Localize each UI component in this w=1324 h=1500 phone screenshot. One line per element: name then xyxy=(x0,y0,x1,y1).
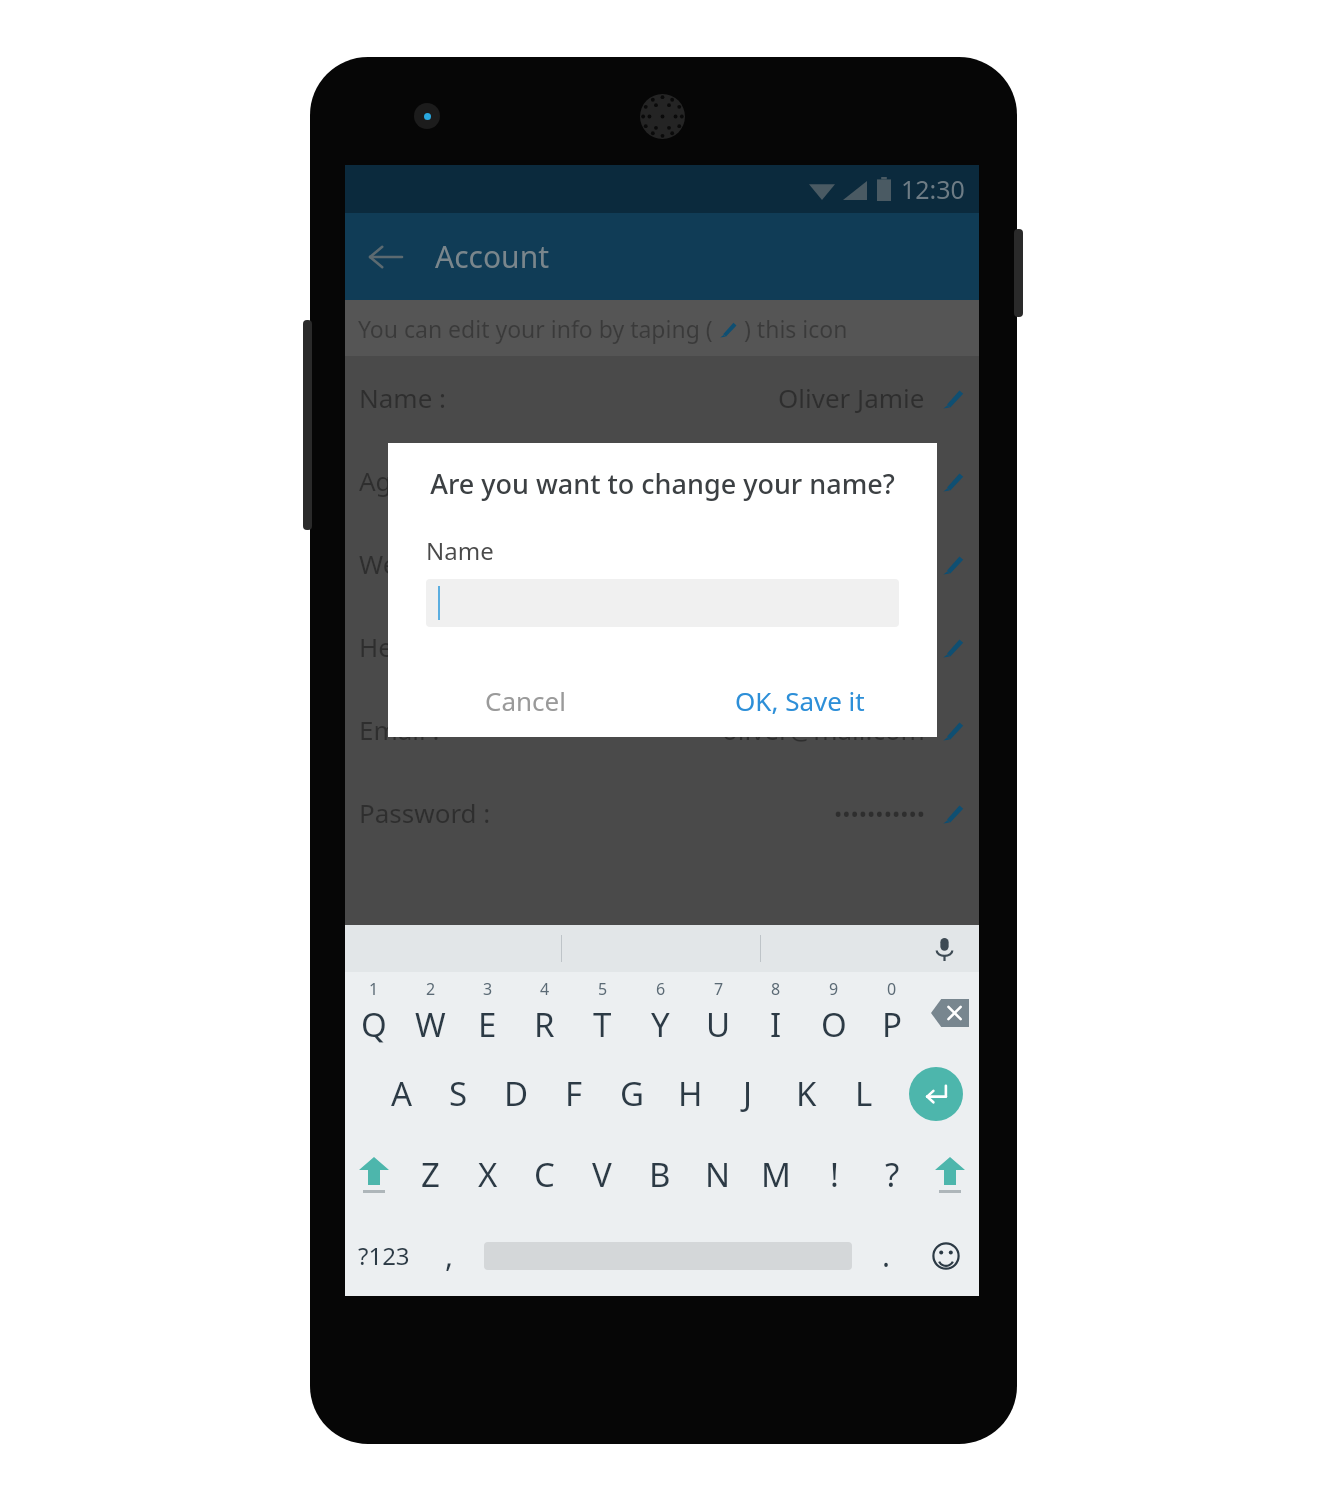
staticText: M xyxy=(761,1152,791,1197)
button[interactable]: M xyxy=(747,1134,805,1215)
button[interactable]: , xyxy=(422,1215,476,1296)
staticText: 7 xyxy=(714,978,724,1000)
button[interactable]: H xyxy=(661,1053,719,1134)
staticText: S xyxy=(449,1071,468,1116)
staticText: N xyxy=(705,1152,731,1197)
button[interactable]: D xyxy=(487,1053,545,1134)
button[interactable]: Back xyxy=(357,229,413,285)
button[interactable]: Shift xyxy=(345,1134,402,1215)
button[interactable]: J xyxy=(719,1053,777,1134)
button[interactable]: A xyxy=(373,1053,430,1134)
staticText: L xyxy=(855,1071,873,1116)
staticText: J xyxy=(743,1071,753,1116)
button[interactable]: Space xyxy=(476,1215,859,1296)
staticText: O xyxy=(821,1002,847,1047)
staticText: Cancel xyxy=(485,683,566,718)
staticText: Age : xyxy=(359,463,420,498)
staticText: ! xyxy=(830,1152,839,1197)
button[interactable]: X xyxy=(459,1134,516,1215)
staticText: Password : xyxy=(359,795,491,830)
staticText: 3 xyxy=(483,978,493,1000)
staticText: 6 xyxy=(656,978,666,1000)
staticText: E xyxy=(478,1002,497,1047)
staticText: Z xyxy=(421,1152,440,1197)
button[interactable]: 5 xyxy=(573,972,631,1053)
staticText: 5 xyxy=(598,978,608,1000)
staticText: B xyxy=(649,1152,671,1197)
staticText: Oliver Jamie xyxy=(778,380,925,415)
staticText: V xyxy=(592,1152,612,1197)
button[interactable]: G xyxy=(603,1053,661,1134)
staticText: P xyxy=(882,1002,902,1047)
button[interactable]: 4 xyxy=(516,972,573,1053)
button[interactable]: Backspace xyxy=(921,972,979,1053)
button[interactable]: K xyxy=(777,1053,835,1134)
button[interactable]: 9 xyxy=(805,972,863,1053)
button[interactable]: Cancel xyxy=(388,663,662,737)
staticText: Are you want to change your name? xyxy=(388,465,937,502)
staticText: U xyxy=(706,1002,731,1047)
staticText: Account xyxy=(435,236,550,277)
button[interactable]: L xyxy=(835,1053,893,1134)
button[interactable]: 6 xyxy=(631,972,689,1053)
staticText: 2 xyxy=(426,978,436,1000)
staticText: 12:30 xyxy=(901,172,965,206)
button[interactable]: Height : xyxy=(345,605,979,688)
button[interactable]: 0 xyxy=(863,972,921,1053)
staticText: Name xyxy=(426,534,494,567)
button[interactable]: N xyxy=(689,1134,747,1215)
button[interactable] xyxy=(426,579,899,627)
button[interactable]: 8 xyxy=(747,972,805,1053)
staticText: F xyxy=(565,1071,583,1116)
button[interactable]: S xyxy=(430,1053,487,1134)
staticText: 1 xyxy=(369,978,379,1000)
staticText: Weight : xyxy=(359,546,460,581)
button[interactable]: Z xyxy=(402,1134,459,1215)
staticText: T xyxy=(593,1002,612,1047)
staticText: 0 xyxy=(887,978,897,1000)
button[interactable]: 1 xyxy=(345,972,402,1053)
button[interactable]: ? xyxy=(863,1134,921,1215)
staticText: I xyxy=(770,1002,782,1047)
button[interactable]: V xyxy=(573,1134,631,1215)
staticText: ) this icon xyxy=(738,313,848,344)
staticText: H xyxy=(678,1071,703,1116)
button[interactable]: F xyxy=(545,1053,603,1134)
button[interactable]: . xyxy=(859,1215,913,1296)
button[interactable]: ! xyxy=(805,1134,863,1215)
button[interactable]: Emoji xyxy=(913,1215,979,1296)
button[interactable]: 7 xyxy=(689,972,747,1053)
staticText: X xyxy=(478,1152,498,1197)
staticText: D xyxy=(504,1071,529,1116)
button[interactable]: Enter xyxy=(893,1053,979,1134)
button[interactable]: Shift xyxy=(921,1134,979,1215)
staticText: ••••••••••• xyxy=(834,798,925,828)
button[interactable]: Email : xyxy=(345,688,979,771)
button[interactable]: Voice input xyxy=(925,930,963,968)
staticText: Q xyxy=(361,1002,387,1047)
button[interactable]: Password : xyxy=(345,771,979,854)
button[interactable]: C xyxy=(516,1134,573,1215)
button[interactable]: ?123 xyxy=(345,1215,422,1296)
button[interactable]: 2 xyxy=(402,972,459,1053)
staticText: . xyxy=(882,1235,891,1276)
staticText: W xyxy=(415,1002,446,1047)
staticText: A xyxy=(391,1071,413,1116)
staticText: 9 xyxy=(829,978,839,1000)
button[interactable]: Weight : xyxy=(345,522,979,605)
button[interactable]: OK, Save it xyxy=(662,663,937,737)
staticText: Height : xyxy=(359,629,455,664)
button[interactable]: Name : xyxy=(345,356,979,439)
staticText: You can edit your info by taping ( xyxy=(358,313,719,344)
button[interactable]: 3 xyxy=(459,972,516,1053)
staticText: K xyxy=(796,1071,817,1116)
staticText: oliver@mail.com xyxy=(722,712,925,747)
button[interactable]: Age : xyxy=(345,439,979,522)
button[interactable]: B xyxy=(631,1134,689,1215)
staticText: OK, Save it xyxy=(735,683,865,718)
staticText: ?123 xyxy=(358,1239,410,1272)
staticText: Email : xyxy=(359,712,440,747)
staticText: ? xyxy=(885,1152,900,1197)
